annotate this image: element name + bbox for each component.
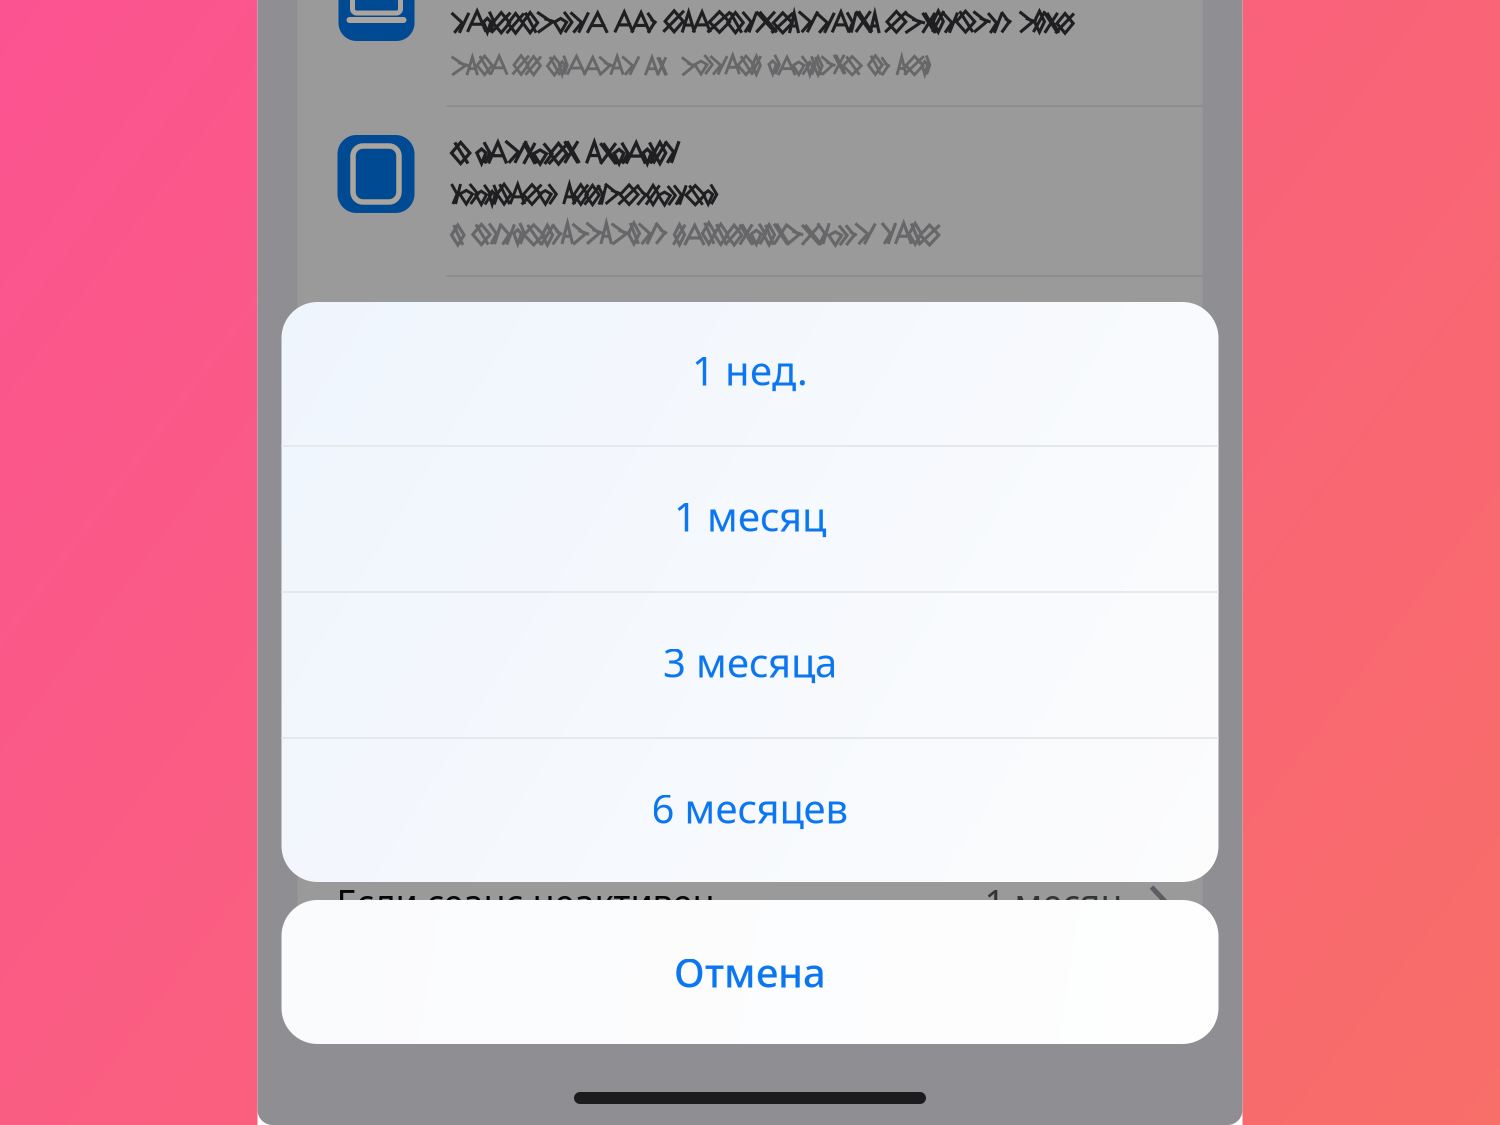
- staticText: 6 месяцев: [651, 781, 848, 834]
- button[interactable]: Отмена: [281, 900, 1218, 1044]
- staticText: Если сеанс неактивен: [336, 878, 714, 926]
- staticText: 1 месяц: [984, 878, 1122, 926]
- staticText: 1 нед.: [692, 343, 808, 396]
- button[interactable]: 1 нед.: [281, 301, 1218, 445]
- button[interactable]: Mac session: [297, 0, 1202, 105]
- button[interactable]: 1 месяц: [281, 447, 1218, 591]
- staticText: 3 месяца: [663, 635, 837, 688]
- button[interactable]: 6 месяцев: [281, 739, 1218, 883]
- button[interactable]: 3 месяца: [281, 593, 1218, 737]
- staticText: Отмена: [674, 945, 826, 998]
- staticText: 1 месяц: [674, 489, 826, 542]
- button[interactable]: Если сеанс неактивен: [299, 876, 1202, 928]
- button[interactable]: iPad session: [297, 107, 1202, 275]
